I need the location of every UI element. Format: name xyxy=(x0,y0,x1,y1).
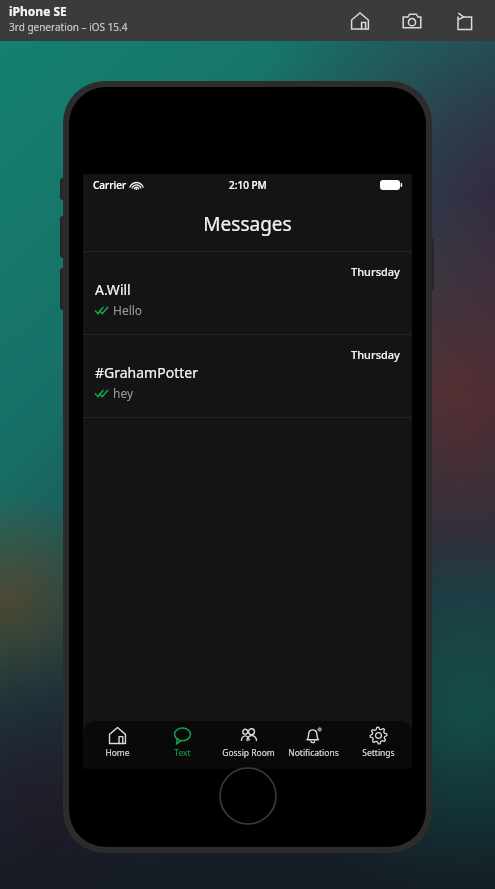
staticText: iPhone SE xyxy=(9,3,67,19)
button[interactable]: Rotate xyxy=(451,8,477,34)
staticText: Carrier xyxy=(93,178,127,192)
staticText: Home xyxy=(105,747,130,759)
staticText: Thursday xyxy=(351,347,400,362)
button[interactable]: Thursday xyxy=(83,335,412,417)
staticText: 3rd generation – iOS 15.4 xyxy=(9,20,128,34)
staticText: #GrahamPotter xyxy=(95,363,198,382)
staticText: hey xyxy=(113,385,134,401)
staticText: Thursday xyxy=(351,264,400,279)
button[interactable]: Screenshot xyxy=(399,8,425,34)
button[interactable]: Home xyxy=(86,726,148,769)
staticText: Text xyxy=(174,747,191,759)
staticText: Settings xyxy=(362,747,395,759)
button[interactable]: Home button xyxy=(219,767,277,825)
staticText: Gossip Room xyxy=(222,747,275,759)
staticText: Hello xyxy=(113,302,143,318)
button[interactable]: Gossip Room xyxy=(217,726,279,769)
button[interactable]: Thursday xyxy=(83,252,412,334)
button[interactable]: Settings xyxy=(347,726,409,769)
staticText: Notifications xyxy=(288,747,339,759)
staticText: 2:10 PM xyxy=(229,178,267,192)
staticText: A.Will xyxy=(95,280,131,299)
button[interactable]: Notifications xyxy=(282,726,344,769)
button[interactable]: Home xyxy=(347,8,373,34)
staticText: Messages xyxy=(203,211,292,237)
button[interactable]: Text xyxy=(151,726,213,769)
